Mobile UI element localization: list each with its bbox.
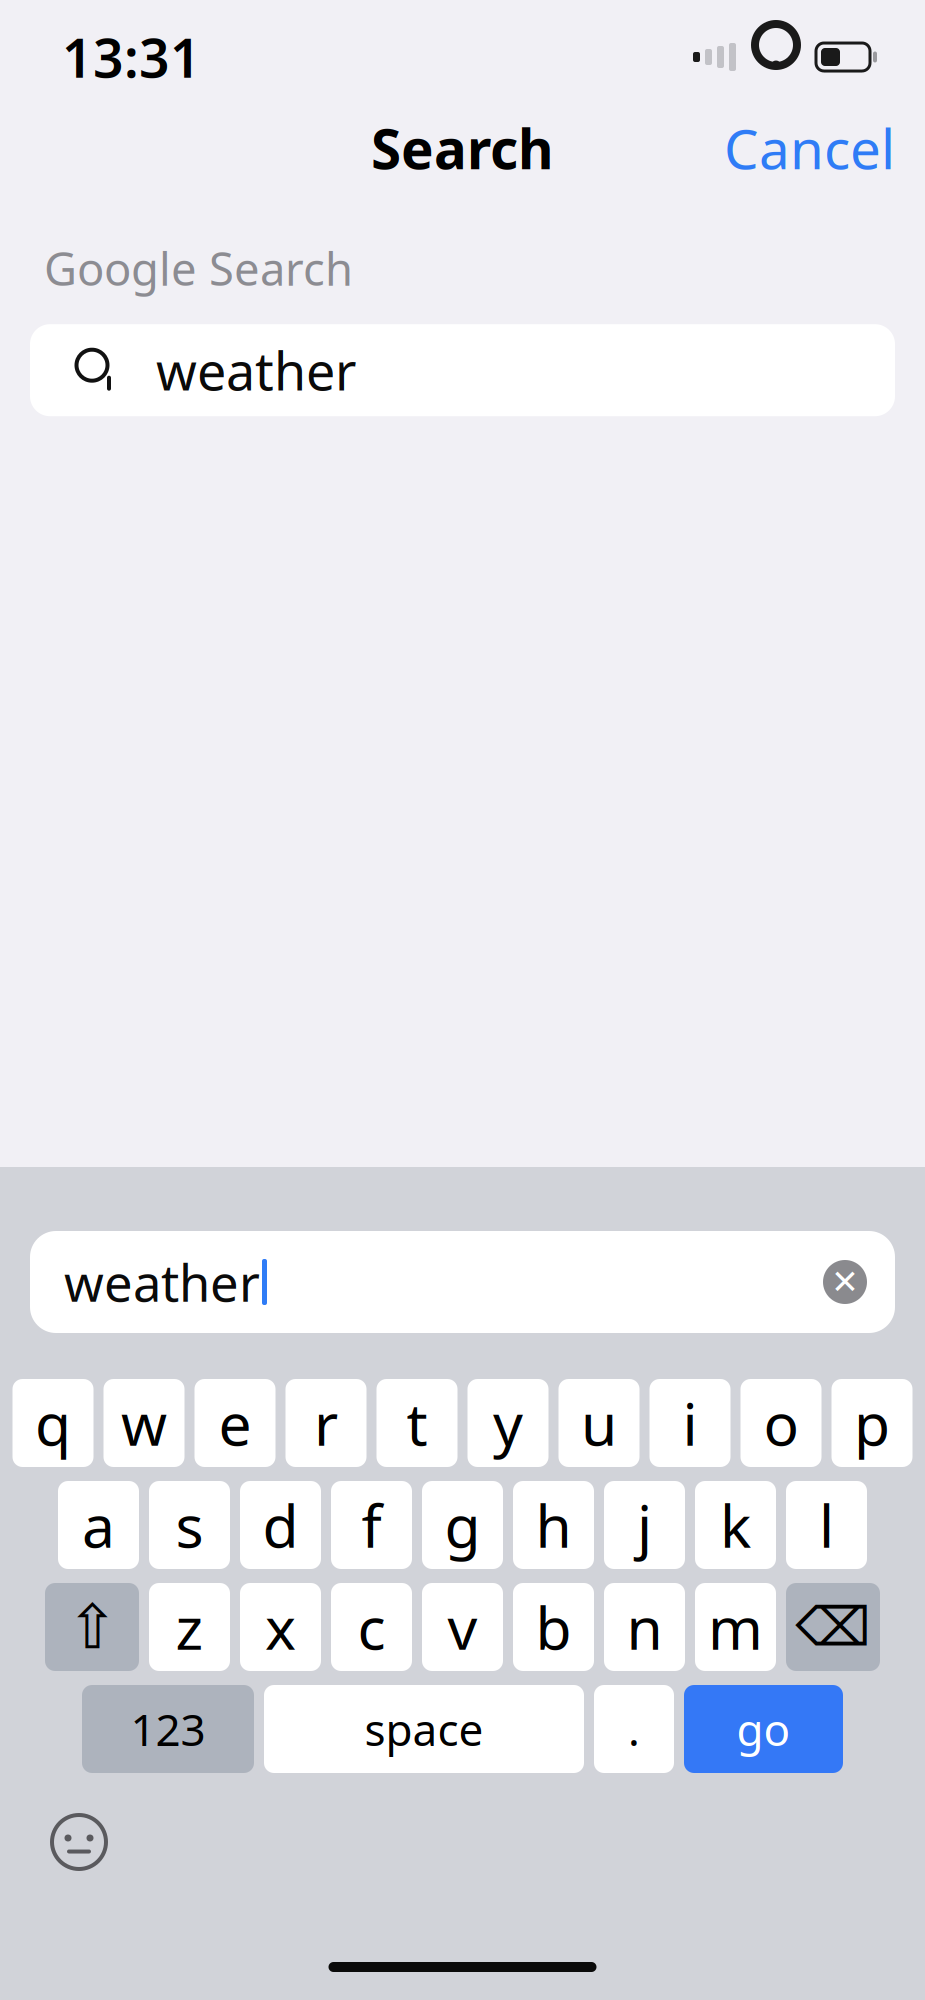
button[interactable]: o (740, 1379, 821, 1467)
button[interactable]: p (831, 1379, 912, 1467)
staticText: 123 (130, 1700, 205, 1758)
staticText: h (535, 1486, 571, 1564)
staticText: k (720, 1486, 751, 1564)
button[interactable]: f (331, 1481, 412, 1569)
button[interactable]: b (513, 1583, 594, 1671)
button[interactable]: d (240, 1481, 321, 1569)
button[interactable]: c (331, 1583, 412, 1671)
button[interactable]: x (240, 1583, 321, 1671)
button[interactable]: . (594, 1685, 674, 1773)
staticText: o (763, 1384, 798, 1462)
staticText: space (364, 1700, 483, 1758)
staticText: r (314, 1384, 338, 1462)
button[interactable]: j (604, 1481, 685, 1569)
button[interactable]: a (58, 1481, 139, 1569)
staticText: i (682, 1384, 697, 1462)
staticText: j (637, 1486, 652, 1564)
staticText: p (854, 1384, 890, 1462)
button[interactable]: Cancel (708, 100, 911, 196)
staticText: q (35, 1384, 71, 1462)
staticText: m (708, 1588, 763, 1666)
button[interactable]: r (285, 1379, 366, 1467)
staticText: ✕ (831, 1263, 859, 1301)
button[interactable]: m (695, 1583, 776, 1671)
button[interactable]: Emoji keyboard (36, 1799, 122, 1885)
staticText: d (262, 1486, 298, 1564)
button[interactable]: t (376, 1379, 457, 1467)
staticText: a (82, 1486, 115, 1564)
button[interactable]: l (786, 1481, 867, 1569)
button[interactable]: 123 (82, 1685, 254, 1773)
button[interactable]: Shift (45, 1583, 139, 1671)
button[interactable]: weather (30, 324, 895, 416)
button[interactable]: z (149, 1583, 230, 1671)
button[interactable]: q (12, 1379, 93, 1467)
staticText: f (361, 1486, 381, 1564)
button[interactable]: h (513, 1481, 594, 1569)
button[interactable]: weather (30, 1231, 895, 1333)
button[interactable]: k (695, 1481, 776, 1569)
staticText: Cancel (724, 112, 895, 184)
staticText: weather (156, 336, 356, 405)
button[interactable]: e (194, 1379, 275, 1467)
staticText: w (121, 1384, 167, 1462)
button[interactable]: y (467, 1379, 548, 1467)
button[interactable]: n (604, 1583, 685, 1671)
staticText: z (175, 1588, 203, 1666)
button[interactable]: go (684, 1685, 843, 1773)
button[interactable]: i (649, 1379, 730, 1467)
staticText: e (218, 1384, 251, 1462)
button[interactable]: v (422, 1583, 503, 1671)
staticText: t (406, 1384, 427, 1462)
button[interactable]: s (149, 1481, 230, 1569)
staticText: Google Search (44, 238, 353, 298)
staticText: s (175, 1486, 203, 1564)
staticText: l (819, 1486, 834, 1564)
staticText: g (444, 1486, 480, 1564)
staticText: x (265, 1588, 296, 1666)
staticText: c (357, 1588, 385, 1666)
staticText: b (535, 1588, 571, 1666)
staticText: 13:31 (62, 22, 201, 92)
staticText: ⇧ (66, 1592, 117, 1662)
staticText: v (447, 1588, 477, 1666)
button[interactable]: Delete (786, 1583, 880, 1671)
staticText: ⌫ (795, 1597, 870, 1657)
staticText: go (736, 1700, 790, 1758)
staticText: y (493, 1384, 523, 1462)
button[interactable]: w (103, 1379, 184, 1467)
button[interactable]: space (264, 1685, 584, 1773)
button[interactable]: g (422, 1481, 503, 1569)
staticText: weather (64, 1248, 260, 1316)
staticText: n (626, 1588, 662, 1666)
button[interactable]: u (558, 1379, 639, 1467)
staticText: u (581, 1384, 617, 1462)
staticText: Search (371, 112, 554, 184)
staticText: . (628, 1700, 640, 1758)
